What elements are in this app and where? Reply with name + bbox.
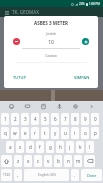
- staticText: h: [59, 144, 62, 150]
- button[interactable]: .: [71, 169, 79, 181]
- button[interactable]: ?123: [1, 169, 12, 181]
- button[interactable]: t: [41, 127, 49, 139]
- staticText: p: [94, 130, 97, 136]
- button[interactable]: q: [1, 127, 9, 139]
- button[interactable]: More options: [87, 102, 96, 111]
- button[interactable]: English (US): [24, 169, 69, 181]
- button[interactable]: Menu: [3, 9, 10, 16]
- button[interactable]: b: [54, 155, 62, 167]
- button[interactable]: l: [86, 141, 94, 153]
- button[interactable]: u: [61, 127, 69, 139]
- button[interactable]: Shift: [1, 155, 12, 167]
- staticText: u: [64, 130, 67, 136]
- staticText: ,: [17, 172, 19, 178]
- button[interactable]: Settings: [71, 102, 80, 111]
- staticText: m: [76, 158, 81, 164]
- button[interactable]: o: [81, 127, 89, 139]
- staticText: o: [84, 130, 87, 136]
- button[interactable]: 0: [91, 113, 99, 125]
- button[interactable]: 6: [51, 113, 59, 125]
- staticText: f: [39, 144, 41, 150]
- staticText: 23%: [79, 2, 85, 6]
- staticText: x: [27, 158, 30, 164]
- staticText: w: [13, 130, 17, 136]
- staticText: g: [49, 144, 52, 150]
- staticText: q: [4, 130, 7, 136]
- button[interactable]: w: [11, 127, 19, 139]
- button[interactable]: v: [44, 155, 52, 167]
- button[interactable]: Tambah: [82, 38, 89, 45]
- staticText: Jumlah: [4, 32, 98, 36]
- button[interactable]: 8: [71, 113, 79, 125]
- button[interactable]: 7: [61, 113, 69, 125]
- staticText: .: [74, 172, 76, 178]
- staticText: r: [34, 130, 36, 136]
- button[interactable]: a: [6, 141, 14, 153]
- staticText: 4: [34, 116, 37, 122]
- button[interactable]: 3: [21, 113, 29, 125]
- button[interactable]: m: [74, 155, 82, 167]
- staticText: 1:08 PM: [89, 2, 100, 6]
- staticText: d: [29, 144, 32, 150]
- button[interactable]: s: [16, 141, 24, 153]
- staticText: e: [24, 130, 27, 136]
- button[interactable]: 5: [41, 113, 49, 125]
- button[interactable]: Voice input: [55, 102, 64, 111]
- button[interactable]: c: [34, 155, 42, 167]
- button[interactable]: Backspace: [84, 155, 95, 167]
- staticText: t: [44, 130, 46, 136]
- button[interactable]: GIF: [23, 102, 32, 111]
- staticText: l: [89, 144, 91, 150]
- staticText: 1: [4, 116, 7, 122]
- button[interactable]: Emoji: [7, 102, 16, 111]
- staticText: i: [74, 130, 76, 136]
- button[interactable]: r: [31, 127, 39, 139]
- button[interactable]: j: [66, 141, 74, 153]
- staticText: a: [9, 144, 12, 150]
- staticText: ?123: [3, 173, 10, 177]
- button[interactable]: Done: [81, 169, 102, 181]
- button[interactable]: Kurangi: [13, 38, 20, 45]
- staticText: 9: [84, 116, 87, 122]
- button[interactable]: Clipboard: [39, 102, 48, 111]
- button[interactable]: p: [91, 127, 99, 139]
- button[interactable]: e: [21, 127, 29, 139]
- button[interactable]: 2: [11, 113, 19, 125]
- button[interactable]: 4: [31, 113, 39, 125]
- staticText: c: [37, 158, 40, 164]
- staticText: j: [69, 144, 71, 150]
- staticText: Done: [87, 173, 97, 178]
- button[interactable]: k: [76, 141, 84, 153]
- staticText: s: [19, 144, 22, 150]
- staticText: English (US): [38, 173, 56, 177]
- staticText: z: [17, 158, 20, 164]
- button[interactable]: x: [24, 155, 32, 167]
- button[interactable]: y: [51, 127, 59, 139]
- staticText: 10: [4, 39, 98, 46]
- button[interactable]: h: [56, 141, 64, 153]
- staticText: n: [67, 158, 70, 164]
- button[interactable]: 9: [81, 113, 89, 125]
- button[interactable]: SIMPAN: [72, 72, 92, 83]
- staticText: 2: [14, 116, 17, 122]
- staticText: Catatan: [4, 54, 98, 58]
- staticText: 6: [54, 116, 57, 122]
- button[interactable]: i: [71, 127, 79, 139]
- button[interactable]: 1: [1, 113, 9, 125]
- button[interactable]: ,: [14, 169, 22, 181]
- staticText: v: [47, 158, 50, 164]
- button[interactable]: d: [26, 141, 34, 153]
- staticText: k: [79, 144, 82, 150]
- staticText: 0: [94, 116, 97, 122]
- staticText: b: [57, 158, 60, 164]
- button[interactable]: z: [14, 155, 22, 167]
- staticText: 8: [74, 116, 77, 122]
- button[interactable]: n: [64, 155, 72, 167]
- button[interactable]: TUTUP: [11, 72, 28, 83]
- staticText: 7: [64, 116, 67, 122]
- staticText: SIMPAN: [74, 75, 90, 80]
- button[interactable]: f: [36, 141, 44, 153]
- staticText: y: [54, 130, 57, 136]
- staticText: TUTUP: [13, 75, 26, 80]
- button[interactable]: g: [46, 141, 54, 153]
